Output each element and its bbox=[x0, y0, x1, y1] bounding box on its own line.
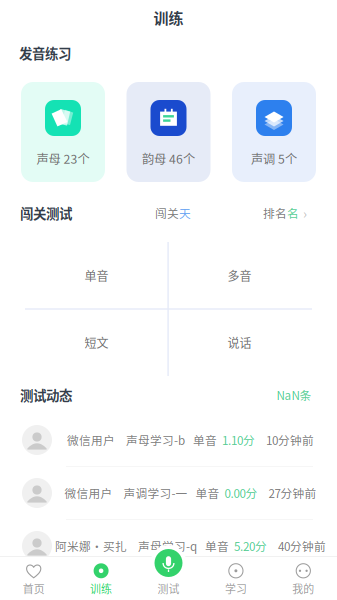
button[interactable]: 声母 23个 bbox=[21, 82, 105, 182]
staticText: 测试动态 bbox=[20, 385, 72, 405]
staticText: 声母学习-q bbox=[138, 538, 197, 554]
staticText: 10分钟前 bbox=[266, 432, 314, 448]
staticText: › bbox=[303, 203, 307, 223]
staticText: 微信用户 bbox=[67, 432, 115, 448]
staticText: 声调 5个 bbox=[251, 150, 297, 167]
button[interactable]: 闯关 bbox=[155, 204, 191, 221]
staticText: 阿米娜·买扎 bbox=[55, 538, 127, 554]
staticText: 5.20分 bbox=[234, 538, 267, 554]
staticText: 0.00分 bbox=[224, 485, 257, 501]
staticText: 闯关测试 bbox=[20, 203, 72, 223]
staticText: 1.10分 bbox=[222, 432, 255, 448]
button[interactable]: 声调 5个 bbox=[232, 82, 316, 182]
staticText: 名 bbox=[287, 204, 299, 221]
staticText: 单音 bbox=[195, 485, 219, 501]
staticText: 测试 bbox=[157, 581, 179, 596]
button[interactable]: 首页 bbox=[0, 556, 67, 600]
staticText: 多音 bbox=[227, 267, 251, 284]
button[interactable]: 我的 bbox=[270, 556, 337, 600]
staticText: 单音 bbox=[205, 538, 229, 554]
button[interactable]: 韵母 46个 bbox=[126, 82, 210, 182]
staticText: 排名 bbox=[263, 204, 287, 221]
button[interactable]: 微信用户 bbox=[0, 466, 337, 519]
staticText: 发音练习 bbox=[19, 43, 71, 63]
button[interactable]: 学习 bbox=[202, 556, 269, 600]
button[interactable]: 排名 bbox=[263, 203, 307, 223]
button[interactable]: 测试 bbox=[135, 556, 202, 600]
button[interactable]: 微信用户 bbox=[0, 413, 337, 466]
staticText: 训练 bbox=[90, 581, 112, 596]
button[interactable]: 多音 bbox=[168, 242, 311, 309]
staticText: 27分钟前 bbox=[268, 485, 316, 501]
staticText: 单音 bbox=[193, 432, 217, 448]
button[interactable]: 单音 bbox=[25, 242, 168, 309]
staticText: 首页 bbox=[23, 581, 45, 596]
staticText: 学习 bbox=[225, 581, 247, 596]
staticText: 声母学习-b bbox=[126, 432, 185, 448]
staticText: 天 bbox=[179, 204, 191, 221]
staticText: 单音 bbox=[84, 267, 108, 284]
staticText: NaN条 bbox=[276, 386, 311, 403]
staticText: 声母 23个 bbox=[36, 150, 89, 167]
staticText: 声调学习-一 bbox=[123, 485, 187, 501]
staticText: 训练 bbox=[153, 7, 183, 28]
staticText: 微信用户 bbox=[64, 485, 112, 501]
button[interactable]: 测试 bbox=[150, 545, 186, 581]
button[interactable]: 说话 bbox=[168, 309, 311, 376]
staticText: 40分钟前 bbox=[278, 538, 326, 554]
staticText: 闯关 bbox=[155, 204, 179, 221]
button[interactable]: 训练 bbox=[68, 556, 135, 600]
staticText: 说话 bbox=[227, 334, 251, 351]
button[interactable]: 短文 bbox=[25, 309, 168, 376]
staticText: 韵母 46个 bbox=[142, 150, 195, 167]
staticText: 短文 bbox=[84, 334, 108, 351]
button[interactable]: 阿米娜·买扎 bbox=[0, 519, 337, 572]
staticText: 我的 bbox=[292, 581, 314, 596]
